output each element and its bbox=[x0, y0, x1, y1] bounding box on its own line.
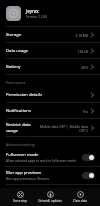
button[interactable]: Clear defaults bbox=[0, 185, 100, 201]
staticText: Permission details bbox=[6, 92, 42, 98]
staticText: Blur app previews in Recents bbox=[6, 177, 49, 181]
button[interactable]: Restrict data usage bbox=[0, 119, 100, 136]
staticText: Fullscreen mode bbox=[6, 152, 39, 158]
staticText: 60% bbox=[81, 65, 88, 69]
staticText: Permissions bbox=[6, 80, 26, 85]
button[interactable]: Storage bbox=[0, 27, 100, 42]
staticText: 128 kB bbox=[77, 49, 88, 53]
button[interactable]: Blur app previews bbox=[0, 167, 100, 184]
staticText: Storage bbox=[6, 32, 22, 38]
staticText: Data usage bbox=[6, 48, 29, 54]
staticText: Force stop bbox=[5, 199, 35, 203]
button[interactable]: Uninstall updates bbox=[35, 188, 65, 203]
staticText: Yes bbox=[82, 109, 88, 113]
button[interactable]: Clear data bbox=[65, 188, 95, 203]
button[interactable]: Toggle bbox=[82, 154, 95, 161]
staticText: Version 2.2.80 bbox=[26, 15, 48, 19]
button[interactable]: Allow restricted settings bbox=[0, 202, 100, 206]
staticText: No defaults set bbox=[6, 195, 29, 199]
staticText: Uninstall updates bbox=[35, 199, 65, 203]
button[interactable]: Toggle bbox=[82, 172, 95, 179]
staticText: 5.18 MB bbox=[75, 33, 88, 37]
staticText: Clear defaults bbox=[6, 188, 34, 194]
button[interactable]: Permission details bbox=[0, 87, 100, 102]
button[interactable]: Notifications bbox=[0, 103, 100, 118]
staticText: Notifications bbox=[6, 108, 31, 114]
staticText: Jeyrex bbox=[26, 8, 39, 14]
staticText: Mobile data OFF 1, Mobile data bbox=[39, 124, 88, 128]
staticText: Battery bbox=[6, 64, 21, 70]
button[interactable]: Fullscreen mode bbox=[0, 149, 100, 166]
staticText: Blur app previews bbox=[6, 170, 42, 176]
staticText: Clear data bbox=[65, 199, 95, 203]
staticText: OFF 2 bbox=[79, 128, 88, 132]
staticText: Restrict data usage bbox=[6, 122, 39, 134]
staticText: Allow selected apps to work in fullscree… bbox=[6, 159, 77, 163]
button[interactable]: Jeyrex bbox=[0, 0, 100, 26]
staticText: Advanced settings bbox=[6, 142, 36, 147]
button[interactable]: Battery bbox=[0, 59, 100, 74]
button[interactable]: Data usage bbox=[0, 43, 100, 58]
staticText: Allow restricted settings bbox=[6, 202, 54, 206]
button[interactable]: Force stop bbox=[5, 188, 35, 203]
